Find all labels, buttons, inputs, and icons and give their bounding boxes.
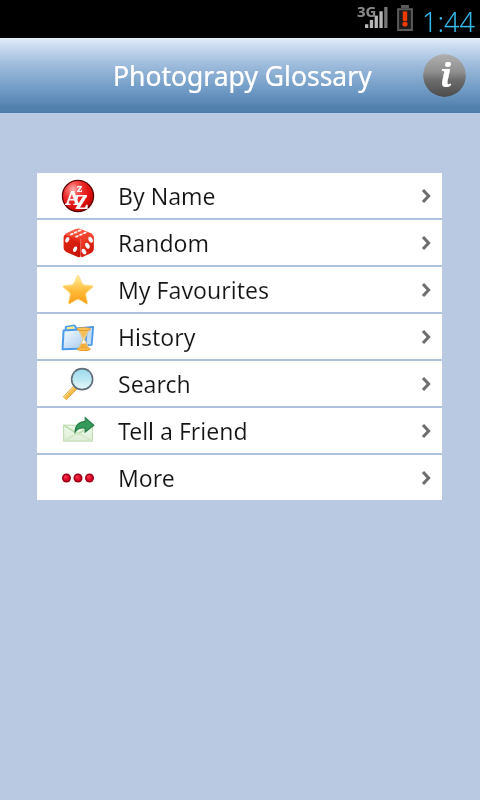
button[interactable]: A bbox=[37, 173, 442, 218]
staticText: Photograpy Glossary bbox=[113, 58, 372, 94]
staticText: Random bbox=[118, 227, 209, 258]
button[interactable]: Random bbox=[37, 220, 442, 265]
staticText: History bbox=[118, 321, 196, 352]
button[interactable]: My Favourites bbox=[37, 267, 442, 312]
staticText: Search bbox=[118, 368, 191, 399]
button[interactable]: Search bbox=[37, 361, 442, 406]
staticText: Tell a Friend bbox=[118, 415, 248, 446]
button[interactable]: Tell a Friend bbox=[37, 408, 442, 453]
button[interactable]: Info bbox=[423, 54, 466, 97]
staticText: More bbox=[118, 462, 175, 493]
staticText: My Favourites bbox=[118, 274, 269, 305]
staticText: By Name bbox=[118, 180, 216, 211]
staticText: 1:44 bbox=[422, 3, 475, 40]
staticText: z bbox=[77, 181, 83, 195]
staticText: A bbox=[65, 184, 81, 211]
staticText: 3G bbox=[357, 1, 377, 21]
button[interactable]: History bbox=[37, 314, 442, 359]
button[interactable]: More bbox=[37, 455, 442, 500]
staticText: i bbox=[440, 54, 452, 95]
staticText: Z bbox=[75, 188, 89, 215]
